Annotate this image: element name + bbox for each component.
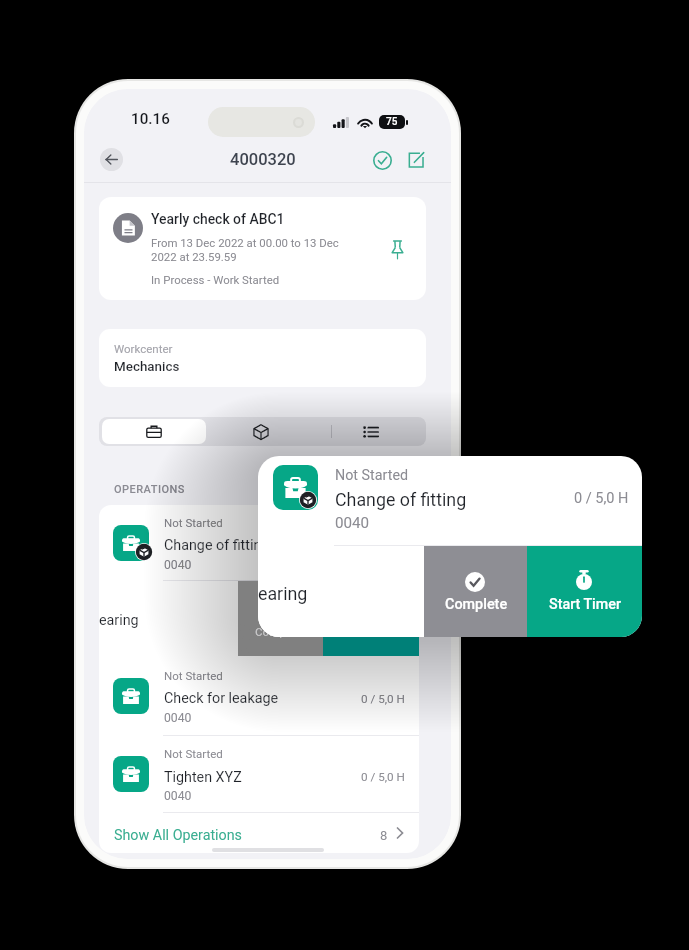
button[interactable]: Start Timer	[527, 546, 642, 637]
staticText: 0 / 5,0 H	[361, 770, 405, 784]
staticText: 0 / 5,0 H	[574, 490, 629, 507]
staticText: 0 / 5,0 H	[361, 539, 405, 553]
staticText: 0040	[164, 558, 192, 572]
staticText: 8	[380, 828, 388, 843]
staticText: 4000320	[230, 150, 296, 169]
staticText: Not Started	[164, 747, 223, 760]
button[interactable]: Yearly check of ABC1	[99, 197, 426, 300]
staticText: 10.16	[131, 110, 170, 128]
staticText: Change of fitting	[164, 537, 334, 554]
button[interactable]: Operations tab	[102, 419, 206, 444]
staticText: 0040	[164, 711, 192, 725]
staticText: Check for leakage	[164, 690, 334, 707]
staticText: earing	[99, 612, 139, 629]
staticText: Yearly check of ABC1	[151, 211, 285, 227]
button[interactable]: Show All Operations	[99, 813, 419, 853]
staticText: Complete	[255, 625, 306, 639]
staticText: Complete	[445, 596, 508, 613]
staticText: Tighten XYZ	[164, 769, 334, 786]
staticText: From 13 Dec 2022 at 00.00 to 13 Dec 2022…	[151, 236, 339, 264]
button[interactable]: Checklist tab	[316, 417, 426, 446]
button[interactable]: earing	[99, 581, 238, 656]
button[interactable]: Not Started	[99, 736, 419, 812]
button[interactable]: Complete order	[367, 145, 397, 175]
staticText: In Process - Work Started	[151, 273, 280, 286]
staticText: 75	[386, 116, 398, 128]
button[interactable]: Complete	[238, 581, 323, 656]
button[interactable]: Complete	[424, 546, 527, 637]
button[interactable]: Pin order	[383, 234, 411, 264]
button[interactable]	[273, 465, 318, 510]
button[interactable]: Workcenter	[99, 329, 426, 387]
staticText: Change of fitting	[335, 489, 550, 510]
button[interactable]: Start Timer	[323, 581, 419, 656]
staticText: Show All Operations	[114, 827, 243, 844]
staticText: Start Timer	[549, 596, 621, 613]
staticText: Not Started	[335, 467, 409, 484]
button[interactable]: Not Started	[99, 656, 419, 735]
button[interactable]: Materials tab	[206, 417, 316, 446]
button[interactable]: Back	[100, 148, 123, 171]
staticText: 0 / 5,0 H	[361, 692, 405, 706]
button[interactable]: Not Started	[99, 505, 419, 580]
staticText: Start Timer	[342, 625, 400, 638]
staticText: 0040	[335, 514, 370, 532]
staticText: Workcenter	[114, 342, 173, 355]
staticText: Mechanics	[114, 359, 180, 375]
staticText: 0040	[164, 789, 192, 803]
button[interactable]: earing	[258, 546, 424, 637]
button[interactable]: Edit order	[401, 145, 431, 175]
staticText: earing	[258, 583, 308, 604]
staticText: OPERATIONS	[114, 483, 185, 496]
staticText: Not Started	[164, 516, 223, 529]
staticText: Not Started	[164, 669, 223, 682]
